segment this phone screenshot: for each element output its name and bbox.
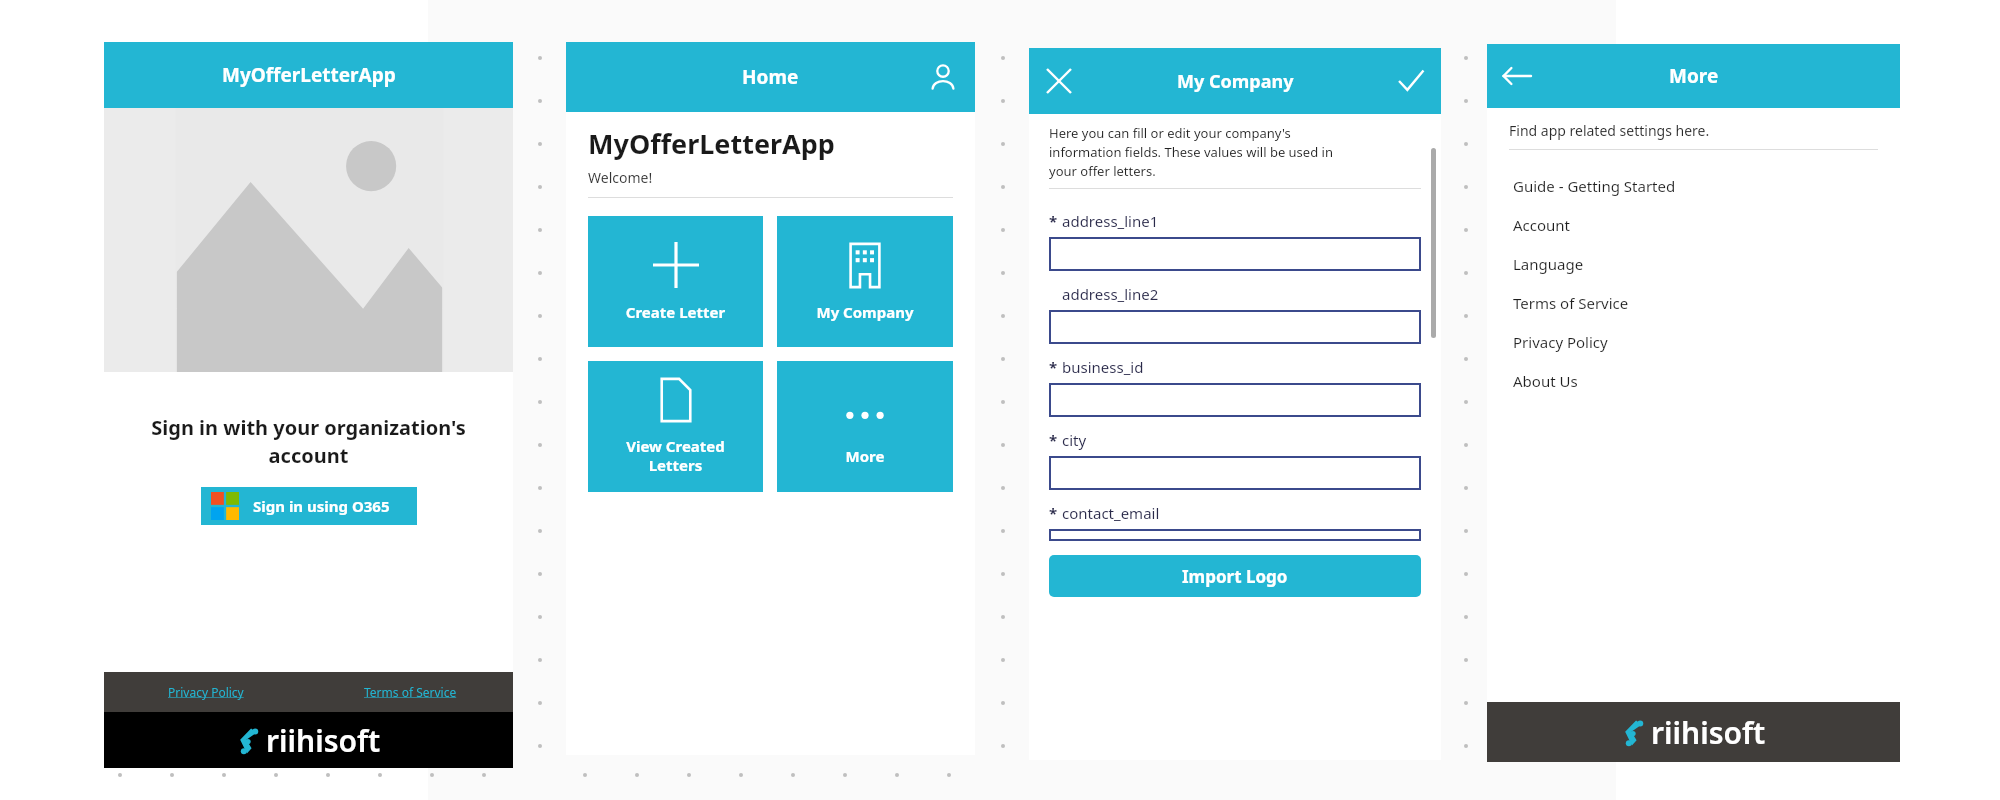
staticText: Privacy Policy <box>168 684 244 700</box>
staticText: Create Letter <box>592 302 759 322</box>
staticText: riihisoft <box>1651 712 1766 753</box>
staticText: city <box>1062 430 1087 450</box>
staticText: * <box>1049 430 1058 450</box>
button[interactable]: Close <box>1039 61 1079 101</box>
button[interactable] <box>1049 456 1421 490</box>
staticText: MyOfferLetterApp <box>222 62 396 88</box>
button[interactable]: Terms of Service <box>308 672 513 712</box>
staticText: More <box>781 446 949 466</box>
staticText: About Us <box>1513 371 1578 391</box>
staticText: View Created Letters <box>592 436 759 475</box>
staticText: More <box>1669 63 1719 89</box>
staticText: Privacy Policy <box>1513 332 1608 352</box>
button[interactable]: View Created Letters <box>588 361 763 492</box>
staticText: MyOfferLetterApp <box>588 125 835 162</box>
staticText: Welcome! <box>588 168 653 187</box>
button[interactable]: Import Logo <box>1049 555 1421 597</box>
button[interactable]: About Us <box>1509 361 1878 400</box>
button[interactable]: Guide - Getting Started <box>1509 166 1878 205</box>
staticText: Sign in with your organization's account <box>128 414 489 469</box>
staticText: Import Logo <box>1182 565 1288 588</box>
button[interactable]: Create Letter <box>588 216 763 347</box>
button[interactable]: Language <box>1509 244 1878 283</box>
staticText: * <box>1049 211 1058 231</box>
staticText: Language <box>1513 254 1584 274</box>
staticText: riihisoft <box>266 720 381 761</box>
button[interactable] <box>1049 237 1421 271</box>
button[interactable]: Privacy Policy <box>104 672 308 712</box>
button[interactable]: Account <box>923 57 963 97</box>
staticText: Find app related settings here. <box>1509 121 1710 140</box>
staticText: Account <box>1513 215 1571 235</box>
staticText: Terms of Service <box>1513 293 1629 313</box>
staticText: Terms of Service <box>364 684 457 700</box>
staticText: Home <box>742 64 799 90</box>
staticText: Here you can fill or edit your company's… <box>1049 124 1333 180</box>
button[interactable] <box>1049 310 1421 344</box>
button[interactable]: My Company <box>777 216 953 347</box>
button[interactable]: Save <box>1391 61 1431 101</box>
button[interactable]: More <box>777 361 953 492</box>
staticText: business_id <box>1062 357 1144 377</box>
staticText: My Company <box>781 302 949 322</box>
button[interactable]: Privacy Policy <box>1509 322 1878 361</box>
button[interactable] <box>1049 383 1421 417</box>
button[interactable]: Account <box>1509 205 1878 244</box>
staticText: * <box>1049 503 1058 523</box>
staticText: My Company <box>1177 69 1294 94</box>
button[interactable]: Back <box>1497 56 1537 96</box>
staticText: contact_email <box>1062 503 1160 523</box>
staticText: Sign in using O365 <box>253 496 390 516</box>
button[interactable]: Terms of Service <box>1509 283 1878 322</box>
staticText: address_line1 <box>1062 211 1159 231</box>
staticText: * <box>1049 357 1058 377</box>
staticText: address_line2 <box>1062 284 1159 304</box>
staticText: Guide - Getting Started <box>1513 176 1676 196</box>
button[interactable]: Sign in using O365 <box>201 487 417 525</box>
